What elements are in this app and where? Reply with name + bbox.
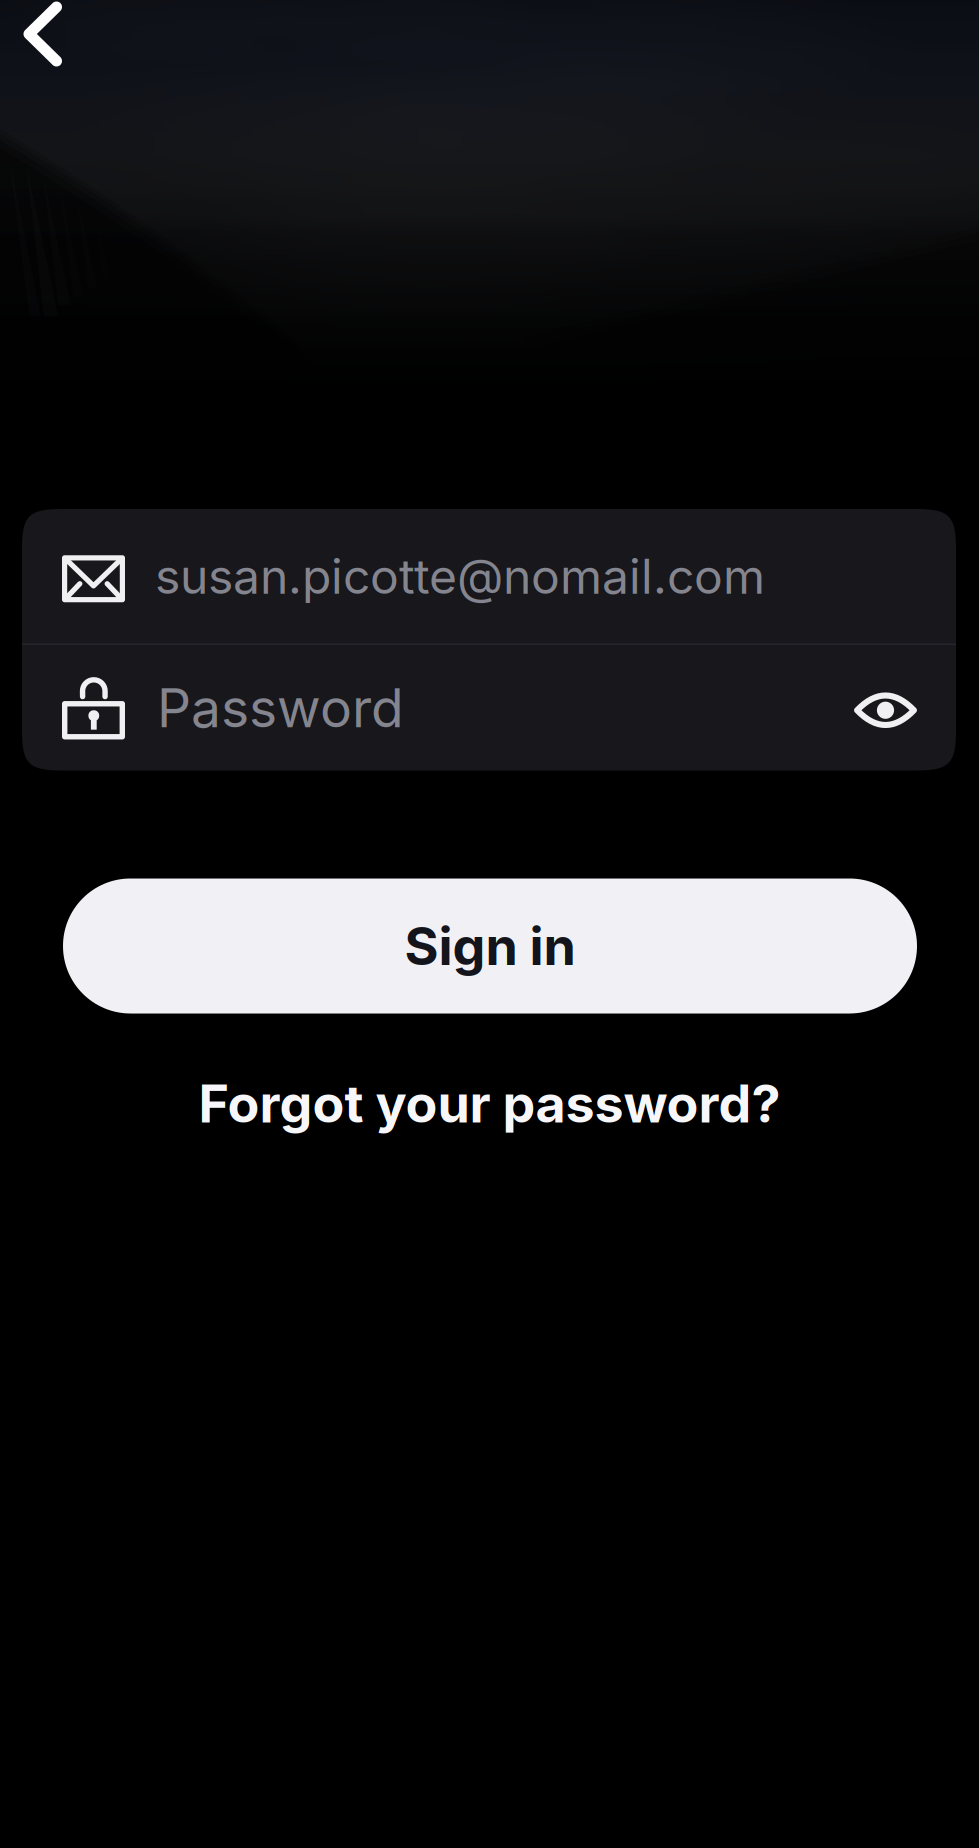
button[interactable]: Back	[0, 0, 103, 88]
button[interactable]: Forgot your password?	[0, 1060, 979, 1146]
staticText: Sign in	[404, 914, 575, 977]
staticText: susan.picotte@nomail.com	[155, 547, 765, 605]
staticText: Forgot your password?	[198, 1072, 780, 1135]
button[interactable]: susan.picotte@nomail.com	[22, 509, 956, 643]
button[interactable]: Sign in	[63, 878, 917, 1013]
button[interactable]: Show password	[812, 645, 956, 770]
button[interactable]: Password	[22, 645, 812, 770]
staticText: Password	[157, 675, 404, 740]
